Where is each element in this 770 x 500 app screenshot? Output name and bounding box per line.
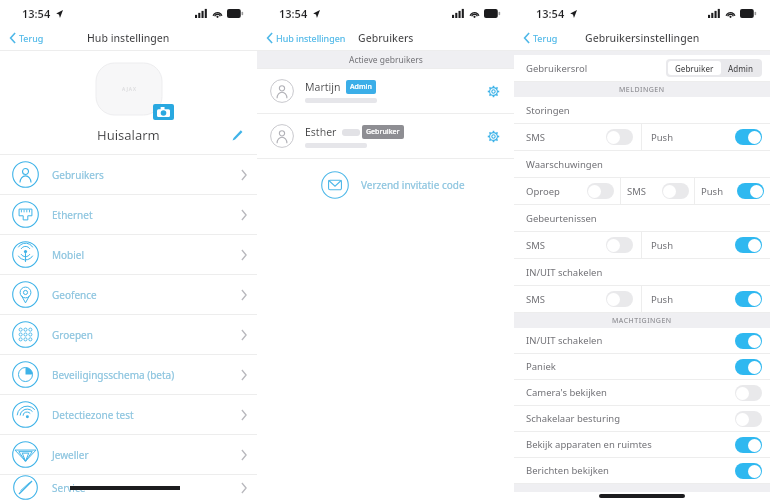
staticText: Paniek [526, 360, 556, 373]
staticText: Gebruikersinstellingen [585, 31, 700, 45]
staticText: Waarschuwingen [526, 158, 603, 171]
staticText: MACHTIGINGEN [612, 316, 672, 326]
staticText: Gebruiker [675, 63, 714, 73]
button[interactable]: Gebruikers [0, 155, 257, 195]
button[interactable]: Service [0, 475, 257, 500]
button[interactable]: Jeweller [0, 435, 257, 475]
button[interactable]: Bekijk apparaten en ruimtes [514, 432, 770, 457]
staticText: Push [651, 293, 674, 306]
staticText: Schakelaar besturing [526, 412, 621, 425]
button[interactable]: Off [606, 291, 633, 307]
staticText: AJAX [122, 86, 137, 93]
button[interactable]: Terug [522, 30, 560, 46]
button[interactable]: On [735, 129, 762, 145]
staticText: 13:54 [536, 6, 565, 21]
button[interactable]: Off [735, 385, 762, 401]
button[interactable]: Groepen [0, 315, 257, 355]
button[interactable]: Edit name [227, 125, 247, 145]
staticText: SMS [627, 185, 647, 198]
staticText: Terug [533, 32, 558, 44]
staticText: Berichten bekijken [526, 464, 609, 477]
staticText: SMS [526, 239, 546, 252]
staticText: 13:54 [22, 6, 51, 21]
button[interactable]: Schakelaar besturing [514, 406, 770, 431]
button[interactable]: User settings [482, 80, 504, 102]
button[interactable]: Push [695, 178, 770, 204]
staticText: Verzend invitatie code [361, 178, 465, 192]
staticText: Oproep [526, 185, 560, 198]
button[interactable]: Push [642, 232, 770, 258]
button[interactable]: Esther [257, 114, 514, 159]
button[interactable]: Off [587, 183, 614, 199]
button[interactable]: IN/UIT schakelen [514, 328, 770, 353]
staticText: SMS [526, 293, 546, 306]
button[interactable]: On [735, 333, 762, 349]
button[interactable]: Off [606, 129, 633, 145]
staticText: Gebruiker [366, 127, 400, 137]
button[interactable]: Admin [721, 61, 760, 75]
staticText: Mobiel [52, 248, 85, 262]
staticText: Beveiligingsschema (beta) [52, 368, 175, 382]
staticText: Actieve gebruikers [349, 54, 423, 66]
button[interactable]: Off [662, 183, 689, 199]
button[interactable]: On [735, 237, 762, 253]
staticText: Push [651, 239, 674, 252]
staticText: Storingen [526, 104, 570, 117]
button[interactable]: Berichten bekijken [514, 458, 770, 483]
staticText: Gebruikers [358, 31, 414, 45]
staticText: IN/UIT schakelen [526, 334, 603, 347]
staticText: Admin [728, 63, 753, 73]
staticText: MELDINGEN [619, 85, 665, 95]
button[interactable]: Oproep [514, 178, 620, 204]
staticText: Esther [305, 125, 337, 139]
staticText: SMS [526, 131, 546, 144]
button[interactable]: SMS [621, 178, 694, 204]
staticText: Huisalarm [97, 126, 160, 144]
staticText: Hub instellingen [276, 32, 346, 44]
button[interactable]: Paniek [514, 354, 770, 379]
staticText: Admin [350, 82, 372, 92]
staticText: Gebruikers [52, 168, 104, 182]
button[interactable]: Camera's bekijken [514, 380, 770, 405]
button[interactable]: On [735, 359, 762, 375]
button[interactable]: SMS [514, 286, 641, 312]
staticText: IN/UIT schakelen [526, 266, 603, 279]
button[interactable]: Hub instellingen [265, 30, 348, 46]
staticText: Gebruikersrol [526, 62, 588, 75]
staticText: Terug [19, 32, 44, 44]
button[interactable]: Gebruiker [668, 61, 721, 75]
button[interactable]: Mobiel [0, 235, 257, 275]
staticText: Groepen [52, 328, 93, 342]
button[interactable]: Change photo [153, 104, 174, 120]
button[interactable]: Push [642, 286, 770, 312]
button[interactable]: On [737, 183, 764, 199]
staticText: Ethernet [52, 208, 93, 222]
staticText: Martijn [305, 80, 341, 94]
staticText: Bekijk apparaten en ruimtes [526, 438, 652, 451]
staticText: Geofence [52, 288, 97, 302]
staticText: Push [651, 131, 674, 144]
button[interactable]: On [735, 463, 762, 479]
button[interactable]: On [735, 437, 762, 453]
button[interactable]: On [735, 291, 762, 307]
button[interactable]: Detectiezone test [0, 395, 257, 435]
button[interactable]: Beveiligingsschema (beta) [0, 355, 257, 395]
button[interactable]: Push [642, 124, 770, 150]
button[interactable]: Off [735, 411, 762, 427]
button[interactable]: SMS [514, 232, 641, 258]
staticText: Service [52, 481, 86, 495]
staticText: 13:54 [279, 6, 308, 21]
button[interactable]: Ethernet [0, 195, 257, 235]
button[interactable]: Verzend invitatie code [257, 159, 514, 211]
staticText: Push [701, 185, 724, 198]
button[interactable]: Geofence [0, 275, 257, 315]
staticText: Camera's bekijken [526, 386, 607, 399]
staticText: Gebeurtenissen [526, 212, 597, 225]
button[interactable]: Martijn [257, 69, 514, 114]
button[interactable]: Off [606, 237, 633, 253]
button[interactable]: SMS [514, 124, 641, 150]
button[interactable]: User settings [482, 125, 504, 147]
button[interactable]: Terug [8, 30, 46, 46]
staticText: Hub instellingen [87, 31, 170, 45]
staticText: Jeweller [52, 448, 89, 462]
